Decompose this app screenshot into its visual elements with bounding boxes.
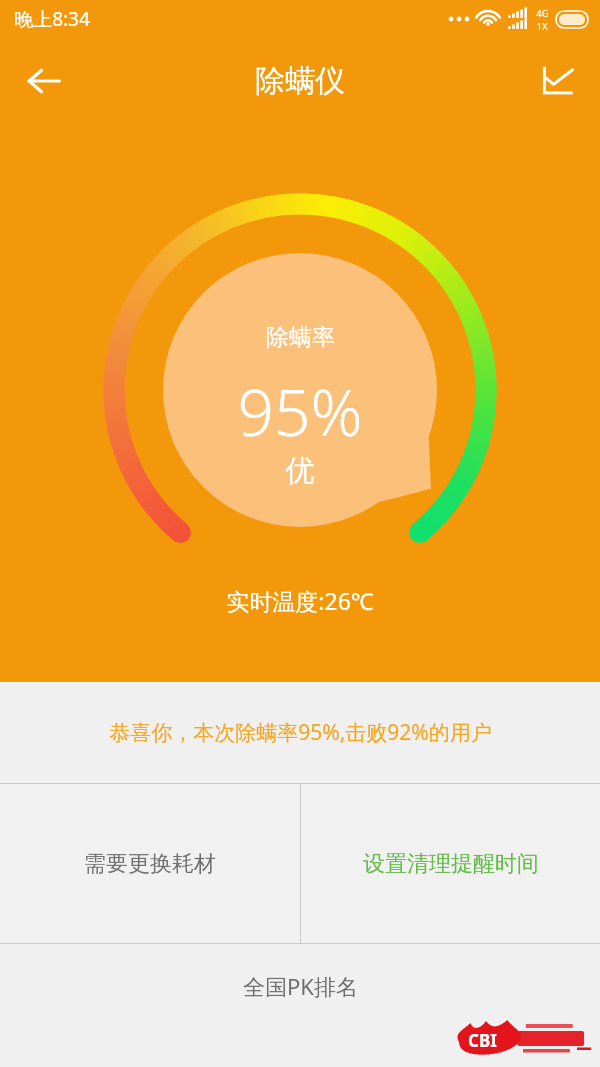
staticText: 设置清理提醒时间 [363,850,539,878]
staticText: 除螨率 [266,323,335,352]
staticText: 优 [285,452,315,490]
button[interactable]: Back [12,49,76,113]
button[interactable]: 需要更换耗材 [0,784,300,943]
button[interactable]: Statistics [528,52,586,110]
staticText: 恭喜你，本次除螨率95%,击败92%的用户 [109,718,492,747]
staticText: 全国PK排名 [243,971,358,1001]
button[interactable]: 全国PK排名 [0,944,600,1028]
staticText: CBI [468,1029,497,1052]
staticText: 需要更换耗材 [84,850,216,878]
staticText: 晚上8:34 [14,6,90,32]
staticText: 1X [536,20,548,31]
staticText: 95% [237,368,363,455]
staticText: 实时温度:26℃ [226,585,374,616]
button[interactable]: 设置清理提醒时间 [301,784,600,943]
staticText: 4G [536,7,549,20]
staticText: 除螨仪 [255,62,345,100]
